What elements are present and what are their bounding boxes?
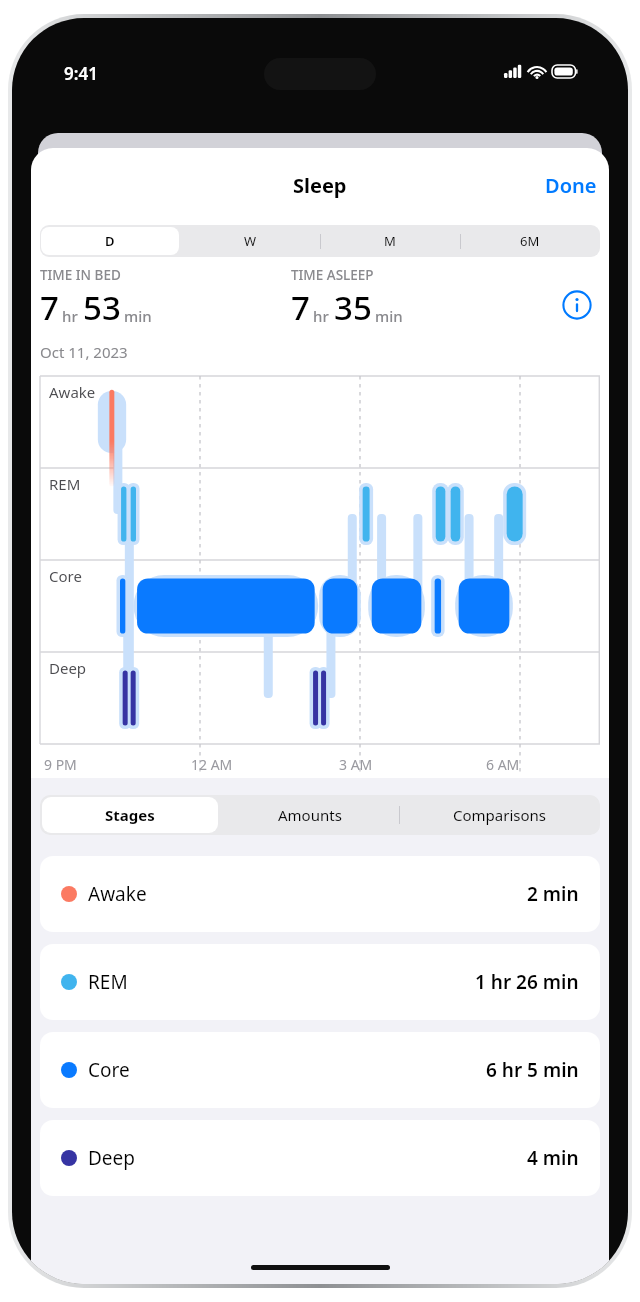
staticText: 1 hr 26 min	[475, 969, 579, 995]
button[interactable]: Awake	[40, 856, 600, 932]
staticText: Comparisons	[453, 805, 547, 825]
staticText: 53	[83, 285, 121, 330]
staticText: 9:41	[64, 62, 98, 85]
staticText: TIME IN BED	[40, 266, 121, 284]
button[interactable]: M	[320, 225, 460, 257]
staticText: 7	[40, 285, 59, 330]
staticText: Core	[49, 566, 82, 586]
staticText: 6 hr 5 min	[486, 1057, 579, 1083]
staticText: REM	[49, 474, 81, 494]
staticText: 3 AM	[339, 755, 373, 774]
staticText: Sleep	[293, 172, 347, 199]
staticText: hr	[62, 306, 78, 326]
staticText: min	[124, 306, 152, 326]
staticText: W	[244, 232, 257, 250]
staticText: REM	[88, 969, 128, 995]
staticText: 4 min	[527, 1145, 579, 1171]
staticText: TIME ASLEEP	[291, 266, 374, 284]
button[interactable]: Information about sleep stages	[560, 288, 594, 322]
staticText: M	[384, 232, 396, 250]
button[interactable]: Core	[40, 1032, 600, 1108]
staticText: 2 min	[527, 881, 579, 907]
staticText: 7	[291, 285, 310, 330]
button[interactable]: Done	[533, 166, 609, 205]
staticText: Deep	[49, 658, 87, 678]
staticText: D	[105, 232, 115, 250]
staticText: Stages	[105, 805, 155, 825]
button[interactable]: Deep	[40, 1120, 600, 1196]
button[interactable]: W	[180, 225, 320, 257]
staticText: Deep	[88, 1145, 135, 1171]
staticText: Awake	[49, 382, 96, 402]
staticText: Done	[545, 172, 597, 199]
button[interactable]: Comparisons	[399, 795, 600, 835]
button[interactable]: 6M	[460, 225, 600, 257]
staticText: min	[375, 306, 403, 326]
button[interactable]: D	[40, 225, 180, 257]
staticText: Awake	[88, 881, 147, 907]
staticText: Core	[88, 1057, 130, 1083]
staticText: 9 PM	[44, 755, 77, 774]
staticText: hr	[313, 306, 329, 326]
staticText: 6 AM	[486, 755, 520, 774]
button[interactable]: Amounts	[220, 795, 399, 835]
staticText: 12 AM	[191, 755, 233, 774]
button[interactable]: Stages	[40, 795, 220, 835]
staticText: Oct 11, 2023	[40, 342, 128, 362]
button[interactable]: REM	[40, 944, 600, 1020]
staticText: Amounts	[278, 805, 342, 825]
staticText: 35	[334, 285, 372, 330]
staticText: 6M	[520, 232, 540, 250]
